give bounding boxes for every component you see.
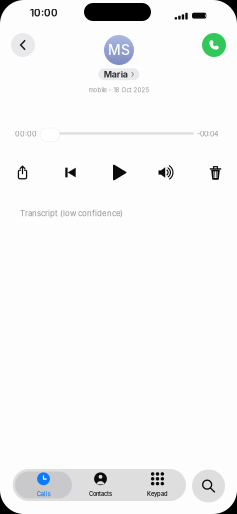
button[interactable]: Delete (203, 158, 228, 187)
button[interactable]: Calls (15, 471, 72, 498)
staticText: Contacts (89, 490, 112, 497)
staticText: MS (108, 42, 130, 58)
button[interactable]: Maria (98, 68, 139, 80)
staticText: Transcript (low confidence) (20, 209, 123, 218)
button[interactable]: Play (107, 158, 132, 187)
button[interactable]: Contacts (72, 471, 129, 498)
button[interactable]: Previous (58, 160, 83, 185)
button[interactable]: Speaker (154, 160, 179, 185)
button[interactable]: Keypad (129, 471, 186, 498)
button[interactable]: Back (11, 33, 35, 57)
button[interactable]: Share (10, 160, 35, 185)
staticText: 00:00 (15, 130, 37, 138)
staticText: Maria (104, 69, 128, 80)
staticText: Keypad (147, 490, 168, 497)
button[interactable]: Search (192, 469, 225, 502)
staticText: Calls (36, 490, 50, 498)
button[interactable]: Call (202, 33, 226, 57)
staticText: -00:04 (197, 130, 218, 138)
staticText: mobile - 18 Oct 2025 (88, 86, 149, 94)
staticText: 10:00 (30, 7, 58, 19)
